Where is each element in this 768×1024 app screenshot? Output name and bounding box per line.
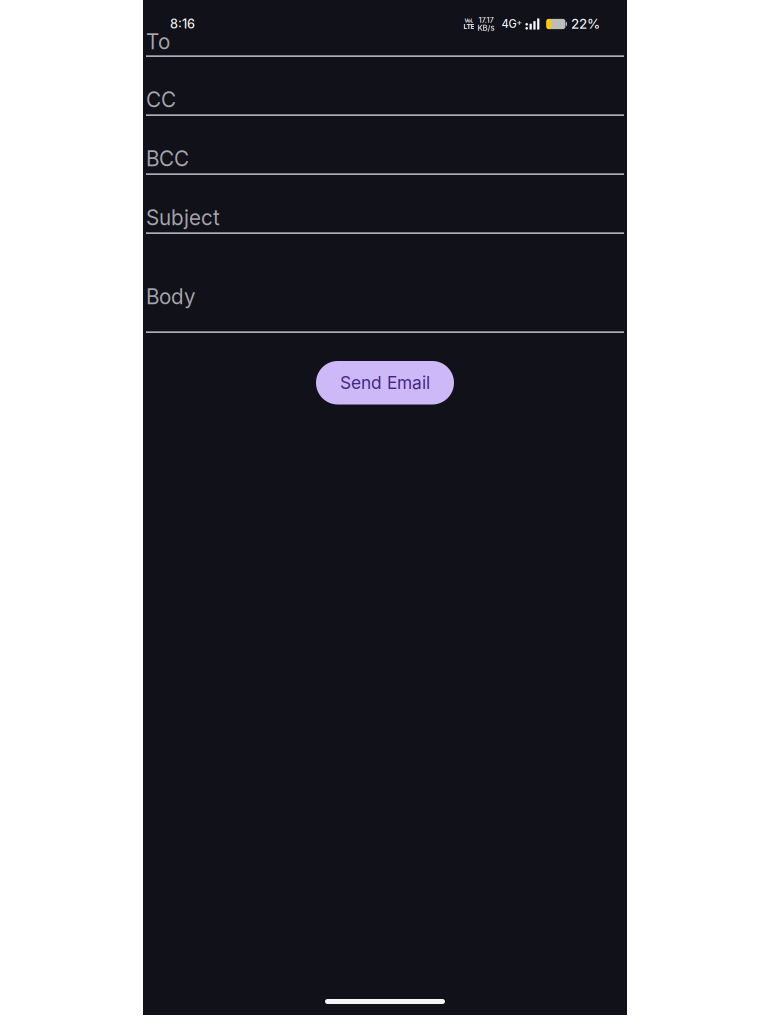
staticText: 22% [571,16,600,32]
button[interactable]: BCC [146,116,624,175]
button[interactable]: Send Email [316,361,454,404]
button[interactable]: CC [146,57,624,116]
staticText: 8:16 [170,16,195,32]
staticText: Body [146,284,196,309]
staticText: To [146,29,170,54]
staticText: CC [146,87,176,112]
staticText: LTE [463,22,474,30]
staticText: Send Email [340,372,430,393]
staticText: 4G [501,17,516,31]
button[interactable]: Body [146,234,624,333]
staticText: BCC [146,146,189,171]
staticText: KB/s [477,23,494,33]
staticText: Subject [146,205,220,230]
button[interactable]: To [146,0,624,57]
staticText: VoL [464,17,473,24]
staticText: 17.17 [478,15,493,25]
staticText: + [516,17,522,27]
button[interactable]: Subject [146,175,624,234]
